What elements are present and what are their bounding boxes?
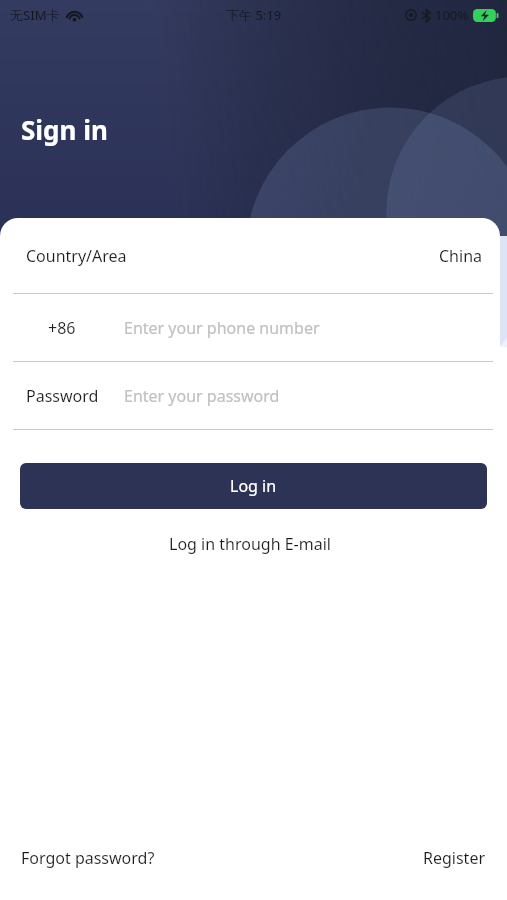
button[interactable]: +86 bbox=[0, 294, 500, 361]
staticText: Forgot password? bbox=[21, 847, 155, 869]
staticText: 无SIM卡 bbox=[10, 6, 60, 24]
staticText: +86 bbox=[48, 317, 76, 339]
staticText: 下午 5:19 bbox=[226, 6, 282, 24]
button[interactable]: Password bbox=[0, 362, 500, 429]
staticText: Register bbox=[423, 847, 486, 869]
other: Battery charging 100 percent bbox=[473, 9, 499, 22]
other: Bluetooth bbox=[422, 9, 431, 22]
button[interactable]: Register bbox=[415, 843, 507, 873]
button[interactable]: Country/Area bbox=[0, 218, 500, 293]
staticText: Enter your password bbox=[124, 385, 280, 407]
staticText: Country/Area bbox=[26, 245, 127, 267]
button[interactable]: Forgot password? bbox=[0, 843, 163, 873]
staticText: Log in through E-mail bbox=[169, 533, 331, 555]
staticText: China bbox=[439, 245, 482, 267]
other: Alarm bbox=[405, 9, 417, 21]
button[interactable]: Log in bbox=[20, 463, 487, 509]
staticText: 100% bbox=[435, 6, 469, 24]
button[interactable]: Log in through E-mail bbox=[0, 526, 500, 562]
other: Wi-Fi bbox=[66, 9, 83, 22]
staticText: Password bbox=[26, 385, 99, 407]
staticText: Log in bbox=[230, 475, 277, 497]
staticText: Sign in bbox=[21, 112, 108, 147]
staticText: Enter your phone number bbox=[124, 317, 320, 339]
